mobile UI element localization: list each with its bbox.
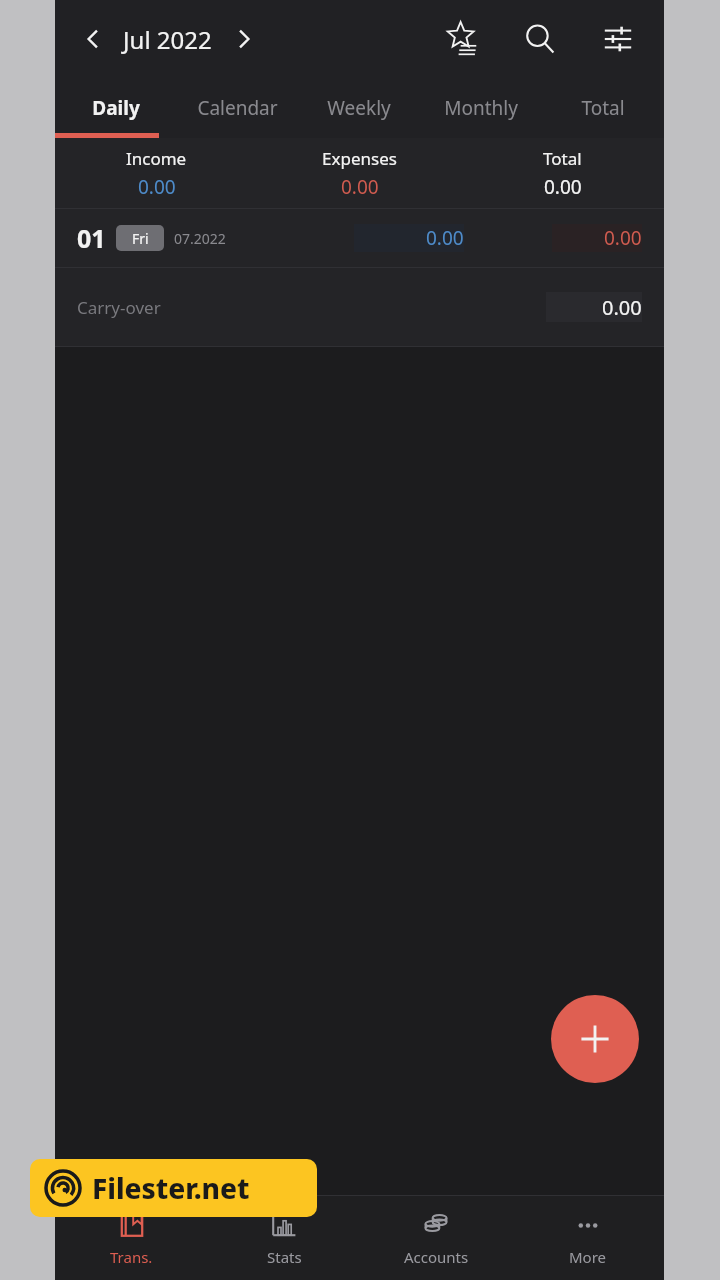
staticText: 0.00 <box>426 225 464 251</box>
staticText: Accounts <box>404 1247 469 1267</box>
staticText: Jul 2022 <box>123 23 212 56</box>
staticText: 0.00 <box>604 225 642 251</box>
staticText: 01 <box>77 221 106 255</box>
staticText: Daily <box>92 95 140 121</box>
staticText: 0.00 <box>544 174 582 200</box>
button[interactable]: More <box>512 1196 664 1280</box>
button[interactable]: Weekly <box>298 78 420 138</box>
button[interactable]: Add transaction <box>551 995 639 1083</box>
button[interactable]: Daily <box>55 78 176 138</box>
staticText: 0.00 <box>138 174 176 200</box>
button[interactable]: Income <box>55 138 258 208</box>
staticText: 0.00 <box>341 174 379 200</box>
button[interactable]: Previous month <box>73 19 113 59</box>
staticText: Total <box>543 147 582 170</box>
button[interactable]: Total <box>461 138 664 208</box>
staticText: Carry-over <box>77 296 161 319</box>
staticText: 07.2022 <box>174 229 226 248</box>
button[interactable]: Total <box>542 78 664 138</box>
button[interactable]: Favorites <box>436 13 488 65</box>
staticText: 0.00 <box>602 294 642 321</box>
button[interactable]: Monthly <box>420 78 542 138</box>
staticText: Weekly <box>327 95 391 121</box>
staticText: Stats <box>267 1247 302 1267</box>
button[interactable]: Accounts <box>360 1196 512 1280</box>
button[interactable]: Jul 2022 <box>119 17 216 62</box>
staticText: Calendar <box>197 95 278 121</box>
button[interactable]: Calendar <box>176 78 298 138</box>
button[interactable]: Next month <box>224 19 264 59</box>
button[interactable]: Filter settings <box>592 13 644 65</box>
staticText: More <box>569 1247 607 1267</box>
button[interactable]: Stats <box>208 1196 360 1280</box>
button[interactable]: Search <box>514 13 566 65</box>
button[interactable]: Carry-over <box>55 268 664 346</box>
staticText: Trans. <box>110 1247 153 1267</box>
button[interactable]: Trans. <box>55 1196 208 1280</box>
staticText: Filester.net <box>92 1169 250 1207</box>
staticText: Monthly <box>444 95 518 121</box>
staticText: Total <box>581 95 625 121</box>
staticText: Income <box>126 147 187 170</box>
button[interactable]: 01 <box>55 209 664 267</box>
staticText: Fri <box>132 229 149 248</box>
button[interactable]: Expenses <box>258 138 461 208</box>
staticText: Expenses <box>322 147 397 170</box>
